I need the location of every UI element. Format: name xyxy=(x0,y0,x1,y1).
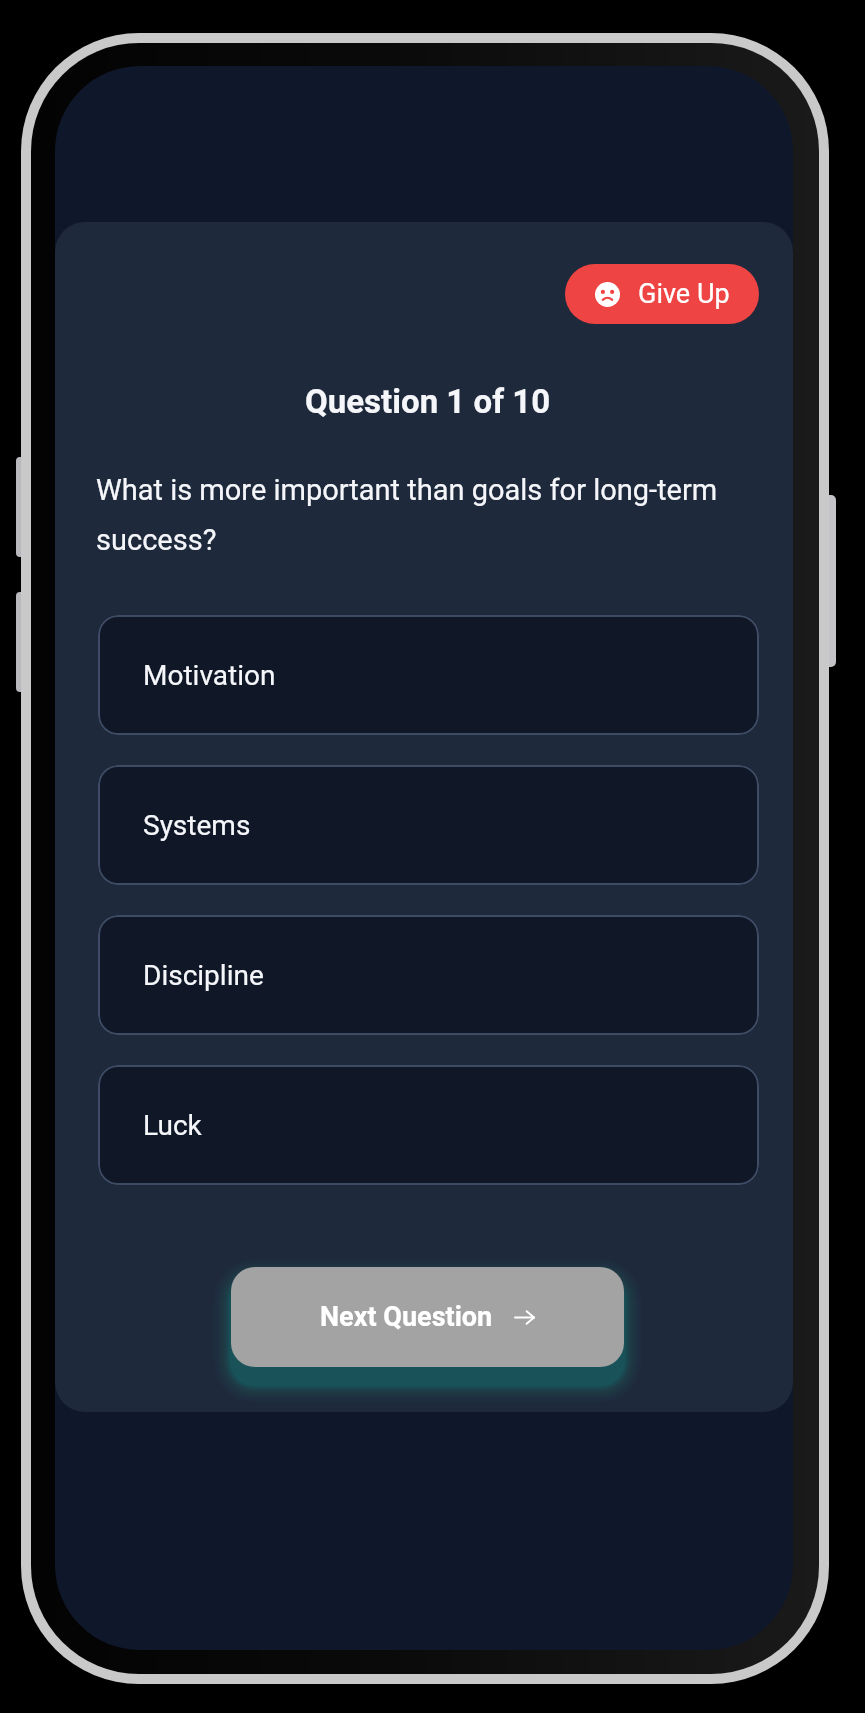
staticText: Question 1 of 10 xyxy=(305,382,551,421)
button[interactable]: Give Up xyxy=(565,264,759,324)
staticText: Systems xyxy=(143,809,251,842)
staticText: Next Question xyxy=(320,1301,493,1333)
button[interactable]: Discipline xyxy=(98,915,759,1035)
button[interactable]: Motivation xyxy=(98,615,759,735)
staticText: Luck xyxy=(143,1109,202,1142)
staticText: Give Up xyxy=(638,278,730,310)
staticText: Discipline xyxy=(143,959,264,992)
staticText: What is more important than goals for lo… xyxy=(96,473,741,557)
button[interactable]: Systems xyxy=(98,765,759,885)
button[interactable]: Next Question xyxy=(231,1267,624,1367)
staticText: Motivation xyxy=(143,659,276,692)
button[interactable]: Luck xyxy=(98,1065,759,1185)
